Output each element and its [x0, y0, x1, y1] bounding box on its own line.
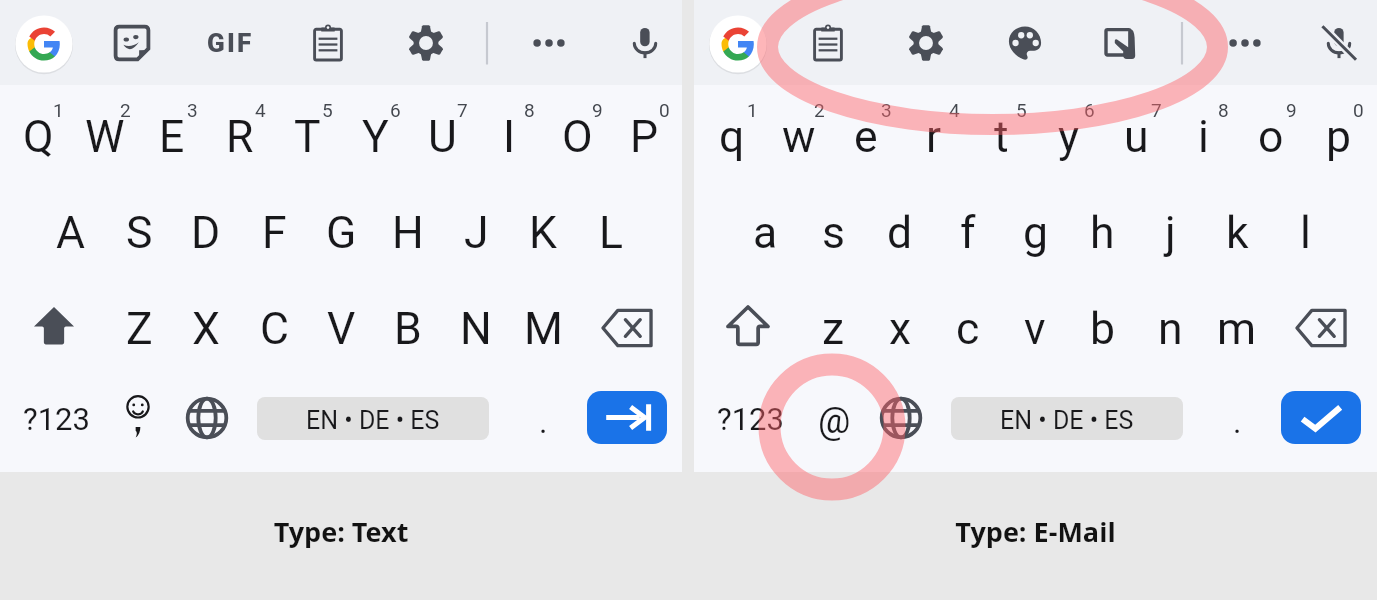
button[interactable]: C — [240, 285, 308, 373]
button[interactable]: Z — [105, 285, 173, 373]
button[interactable]: O — [543, 93, 611, 181]
button[interactable]: Q — [4, 93, 72, 181]
button[interactable]: t — [967, 93, 1035, 181]
button[interactable]: Shift — [28, 301, 80, 353]
button[interactable]: F — [240, 189, 308, 277]
staticText: B — [394, 303, 422, 355]
button[interactable]: E — [138, 93, 206, 181]
staticText: W — [85, 111, 125, 163]
button[interactable]: More options — [1225, 23, 1265, 63]
button[interactable]: . — [518, 392, 568, 452]
staticText: e — [854, 111, 878, 163]
button[interactable]: U — [408, 93, 476, 181]
staticText: I — [503, 111, 516, 163]
button[interactable]: f — [934, 189, 1002, 277]
button[interactable]: V — [307, 285, 375, 373]
staticText: Q — [23, 111, 54, 163]
button[interactable]: L — [577, 189, 645, 277]
button[interactable]: Clipboard — [308, 23, 348, 63]
button[interactable]: EN • DE • ES — [951, 397, 1183, 440]
button[interactable]: Shift — [722, 301, 774, 353]
button[interactable]: y — [1035, 93, 1103, 181]
button[interactable]: q — [698, 93, 766, 181]
button[interactable]: Emoji — [112, 392, 164, 444]
staticText: 8 — [524, 99, 535, 121]
button[interactable]: Change language — [184, 395, 230, 441]
button[interactable]: n — [1136, 285, 1204, 373]
button[interactable]: a — [731, 189, 799, 277]
button[interactable]: Voice input disabled — [1318, 22, 1360, 64]
staticText: . — [539, 403, 548, 441]
staticText: @ — [818, 400, 851, 442]
button[interactable]: i — [1169, 93, 1237, 181]
staticText: EN • DE • ES — [1000, 406, 1134, 435]
staticText: J — [464, 207, 489, 259]
button[interactable]: c — [934, 285, 1002, 373]
button[interactable]: . — [1212, 392, 1262, 452]
button[interactable]: Next — [587, 391, 667, 444]
button[interactable]: More options — [529, 23, 569, 63]
button[interactable]: l — [1271, 189, 1339, 277]
button[interactable]: w — [765, 93, 833, 181]
button[interactable]: e — [832, 93, 900, 181]
button[interactable]: Y — [341, 93, 409, 181]
button[interactable]: d — [866, 189, 934, 277]
button[interactable]: Backspace — [1294, 301, 1348, 355]
button[interactable]: p — [1304, 93, 1372, 181]
staticText: R — [226, 111, 254, 163]
button[interactable]: @ — [804, 385, 864, 457]
button[interactable]: Clipboard — [808, 23, 848, 63]
button[interactable]: g — [1001, 189, 1069, 277]
button[interactable]: GIF — [204, 23, 256, 63]
button[interactable]: H — [374, 189, 442, 277]
button[interactable]: B — [374, 285, 442, 373]
staticText: i — [1198, 111, 1209, 163]
staticText: Y — [362, 111, 389, 163]
button[interactable]: b — [1068, 285, 1136, 373]
button[interactable]: Settings — [905, 22, 947, 64]
button[interactable]: Done — [1281, 391, 1361, 444]
button[interactable]: K — [509, 189, 577, 277]
staticText: 7 — [457, 99, 468, 121]
button[interactable]: X — [172, 285, 240, 373]
button[interactable]: Voice input — [624, 22, 666, 64]
button[interactable]: D — [172, 189, 240, 277]
button[interactable]: r — [900, 93, 968, 181]
button[interactable]: N — [442, 285, 510, 373]
button[interactable]: x — [866, 285, 934, 373]
button[interactable]: s — [799, 189, 867, 277]
button[interactable]: T — [273, 93, 341, 181]
button[interactable]: j — [1136, 189, 1204, 277]
staticText: 2 — [120, 99, 131, 121]
button[interactable]: Google search — [709, 15, 767, 73]
button[interactable]: m — [1203, 285, 1271, 373]
button[interactable]: Settings — [405, 22, 447, 64]
button[interactable]: S — [105, 189, 173, 277]
button[interactable]: A — [37, 189, 105, 277]
button[interactable]: Backspace — [600, 301, 654, 355]
button[interactable]: EN • DE • ES — [257, 397, 489, 440]
button[interactable]: ?123 — [710, 383, 790, 455]
button[interactable]: Google search — [15, 15, 73, 73]
button[interactable]: o — [1237, 93, 1305, 181]
button[interactable]: Stickers — [112, 23, 152, 63]
button[interactable]: G — [307, 189, 375, 277]
button[interactable]: k — [1203, 189, 1271, 277]
button[interactable]: J — [442, 189, 510, 277]
staticText: O — [562, 111, 593, 163]
button[interactable]: Change language — [878, 395, 924, 441]
button[interactable]: P — [610, 93, 678, 181]
button[interactable]: u — [1102, 93, 1170, 181]
staticText: 1 — [747, 99, 758, 121]
button[interactable]: I — [475, 93, 543, 181]
button[interactable]: z — [799, 285, 867, 373]
button[interactable]: ?123 — [16, 383, 96, 455]
button[interactable]: R — [206, 93, 274, 181]
button[interactable]: v — [1001, 285, 1069, 373]
button[interactable]: Themes — [1004, 22, 1046, 64]
button[interactable]: Handwriting — [1101, 23, 1141, 63]
button[interactable]: W — [71, 93, 139, 181]
button[interactable]: h — [1068, 189, 1136, 277]
button[interactable]: M — [509, 285, 577, 373]
staticText: s — [822, 207, 845, 259]
